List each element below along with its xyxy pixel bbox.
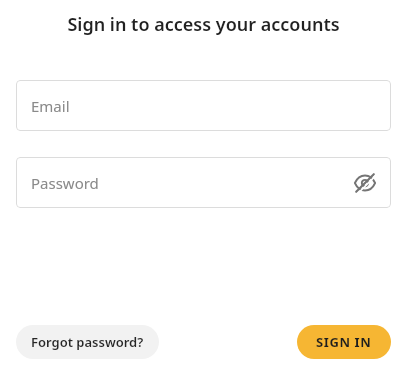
- staticText: Email: [31, 96, 70, 116]
- button[interactable]: Forgot password?: [16, 325, 159, 359]
- button[interactable]: Password: [16, 157, 391, 208]
- staticText: SIGN IN: [316, 333, 372, 351]
- staticText: Sign in to access your accounts: [16, 12, 391, 37]
- button[interactable]: Email: [16, 80, 391, 131]
- staticText: Password: [31, 173, 99, 193]
- button[interactable]: SIGN IN: [297, 325, 391, 359]
- staticText: Forgot password?: [31, 333, 144, 351]
- button[interactable]: Show password: [347, 165, 383, 201]
